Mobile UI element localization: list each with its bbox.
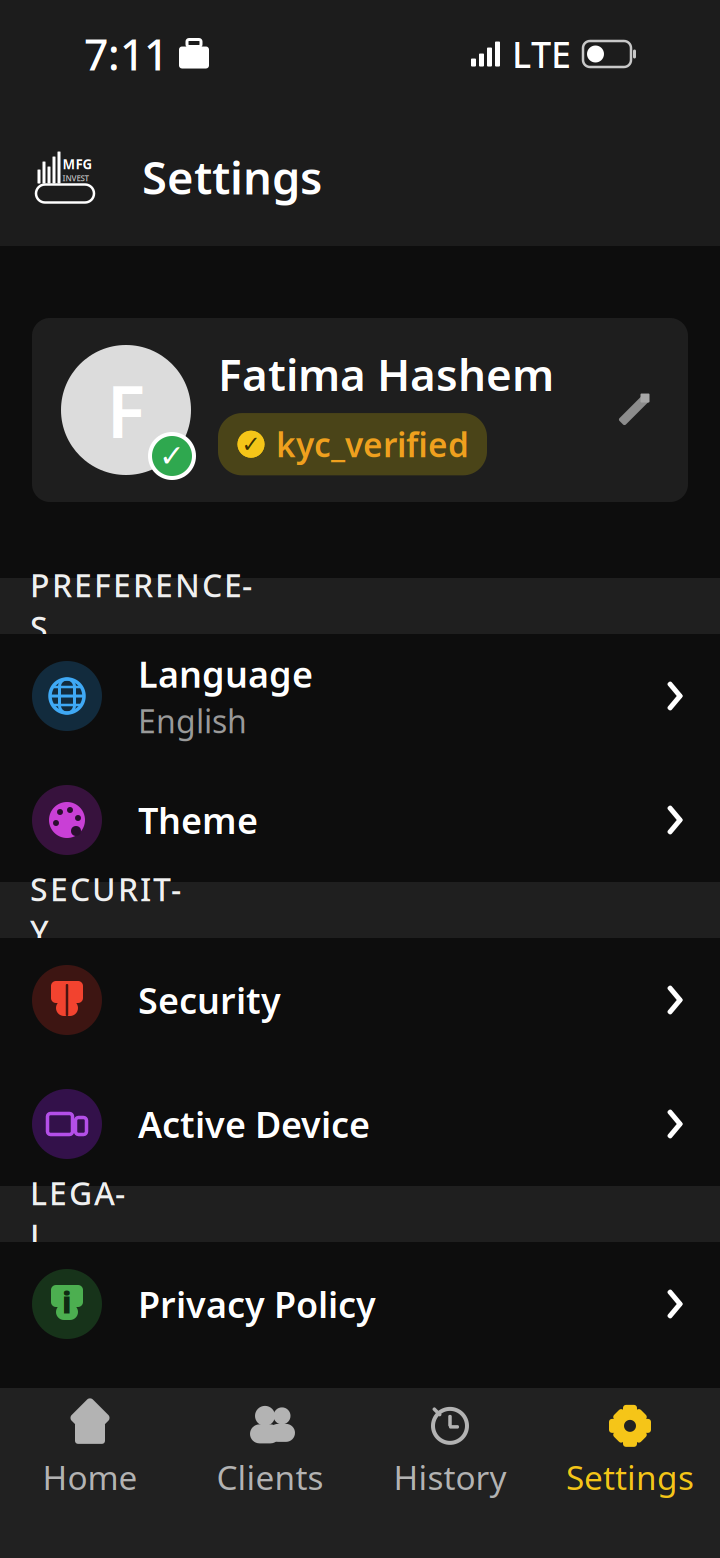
staticText: Fatima Hashem bbox=[218, 345, 554, 403]
staticText: Settings bbox=[566, 1455, 694, 1499]
button[interactable]: Clients bbox=[180, 1402, 360, 1502]
staticText: i bbox=[62, 1282, 72, 1321]
staticText: MFG bbox=[62, 155, 92, 173]
button[interactable]: i bbox=[0, 1242, 720, 1366]
button[interactable]: Language bbox=[0, 634, 720, 758]
button[interactable]: Settings bbox=[540, 1402, 720, 1502]
staticText: Theme bbox=[138, 796, 258, 844]
staticText: LTE bbox=[512, 30, 571, 78]
button[interactable]: History bbox=[360, 1402, 540, 1502]
staticText: F bbox=[106, 362, 145, 458]
staticText: LEGAL bbox=[30, 1171, 125, 1256]
button[interactable]: Edit profile bbox=[604, 380, 664, 440]
staticText: Home bbox=[42, 1455, 137, 1499]
staticText: Active Device bbox=[138, 1100, 370, 1148]
staticText: INVEST bbox=[62, 173, 89, 183]
staticText: Privacy Policy bbox=[138, 1280, 376, 1328]
staticText: kyc_verified bbox=[276, 422, 469, 466]
staticText: Language bbox=[138, 650, 313, 698]
staticText: ✓ bbox=[159, 439, 185, 473]
staticText: History bbox=[393, 1455, 506, 1499]
staticText: PREFERENCES bbox=[30, 563, 252, 648]
staticText: Clients bbox=[216, 1455, 323, 1499]
button[interactable]: Active Device bbox=[0, 1062, 720, 1186]
button[interactable]: Home bbox=[0, 1402, 180, 1502]
staticText: SECURITY bbox=[30, 867, 181, 952]
button[interactable]: Theme bbox=[0, 758, 720, 882]
staticText: 7:11 bbox=[84, 26, 168, 82]
staticText: Security bbox=[138, 976, 281, 1024]
button[interactable]: Security bbox=[0, 938, 720, 1062]
staticText: ✓ bbox=[241, 431, 260, 457]
staticText: English bbox=[138, 700, 247, 742]
staticText: Settings bbox=[142, 147, 322, 207]
